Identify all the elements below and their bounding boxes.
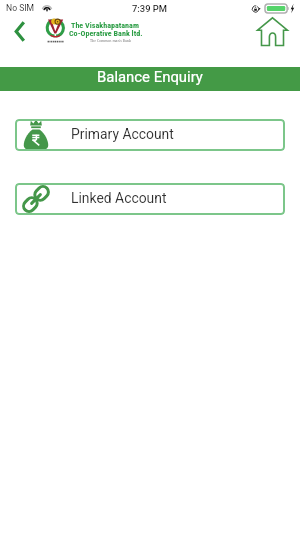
staticText: The Visakhapatanam [71,20,139,29]
staticText: Balance Enquiry [97,68,203,85]
staticText: 7:39 PM [132,3,168,14]
staticText: Co-Operative Bank ltd. [69,28,143,37]
staticText: No SIM [6,3,35,13]
staticText: Primary Account [71,126,174,142]
button[interactable]: Home [254,13,291,50]
button[interactable]: Back [2,13,38,49]
staticText: The Common man's Bank [90,38,132,43]
staticText: Linked Account [71,190,167,206]
button[interactable]: Primary Account [15,119,285,151]
button[interactable]: Linked Account [15,183,285,215]
